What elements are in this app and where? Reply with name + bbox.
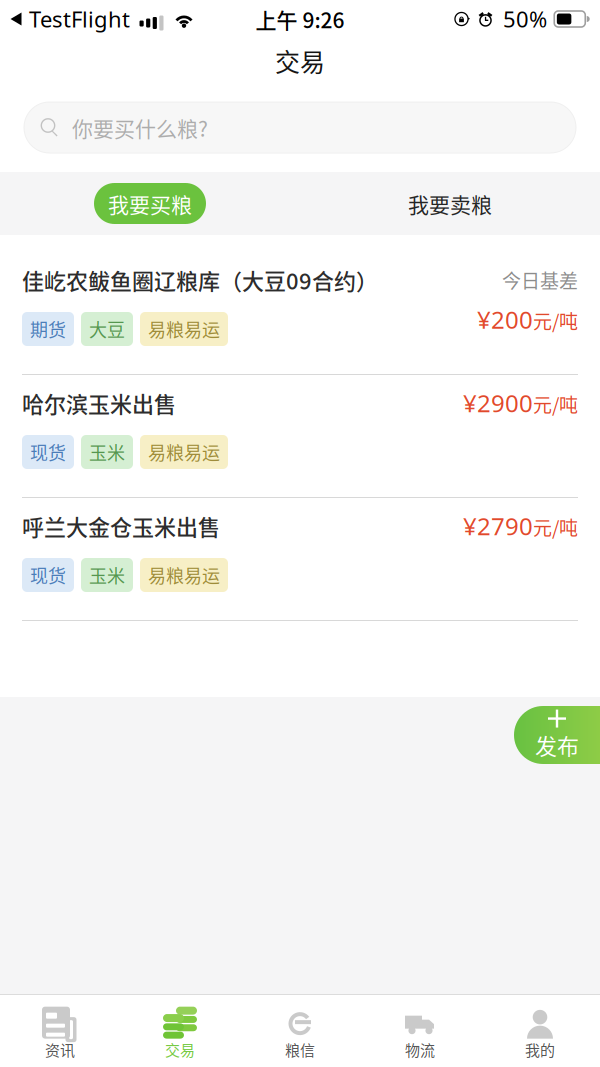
button[interactable]: 我的 [480,995,600,1067]
staticText: 玉米 [89,562,125,588]
staticText: 易粮易运 [148,439,220,465]
button[interactable]: 我要卖粮 [300,183,600,224]
staticText: 我要卖粮 [408,188,492,219]
button[interactable]: 你要买什么粮? [0,102,600,153]
button[interactable]: 呼兰大金仓玉米出售 [0,498,600,620]
button[interactable]: 粮信 [240,995,360,1067]
staticText: 元/吨 [533,513,578,541]
staticText: 期货 [30,316,66,342]
button[interactable]: 我要买粮 [0,183,300,224]
staticText: 呼兰大金仓玉米出售 [22,510,220,542]
staticText: 发布 [535,729,579,761]
staticText: 交易 [275,42,325,79]
staticText: ¥2900 [463,387,533,419]
staticText: 你要买什么粮? [72,112,208,143]
staticText: 我的 [525,1039,555,1060]
staticText: 粮信 [285,1039,315,1060]
staticText: 易粮易运 [148,562,220,588]
staticText: 现货 [30,562,66,588]
staticText: 资讯 [45,1039,75,1060]
button[interactable]: 资讯 [0,995,120,1067]
button[interactable]: 哈尔滨玉米出售 [0,375,600,497]
staticText: 今日基差 [502,266,578,294]
staticText: 物流 [405,1039,435,1060]
staticText: 上午 9:26 [255,4,344,34]
button[interactable]: 发布 [514,706,600,764]
staticText: ¥2790 [463,510,533,542]
staticText: 元/吨 [533,390,578,418]
button[interactable]: 物流 [360,995,480,1067]
staticText: TestFlight [29,4,130,34]
staticText: 我要买粮 [108,188,192,219]
staticText: 佳屹农鲅鱼圈辽粮库（大豆09合约） [22,264,378,296]
button[interactable]: 佳屹农鲅鱼圈辽粮库（大豆09合约） [0,252,600,374]
staticText: 大豆 [89,316,125,342]
staticText: 交易 [165,1039,195,1060]
staticText: 易粮易运 [148,316,220,342]
staticText: 玉米 [89,439,125,465]
staticText: 现货 [30,439,66,465]
staticText: 哈尔滨玉米出售 [22,387,176,419]
button[interactable]: 交易 [120,995,240,1067]
staticText: 50% [503,4,547,34]
staticText: ¥200 [477,303,533,336]
staticText: 元/吨 [533,307,578,334]
